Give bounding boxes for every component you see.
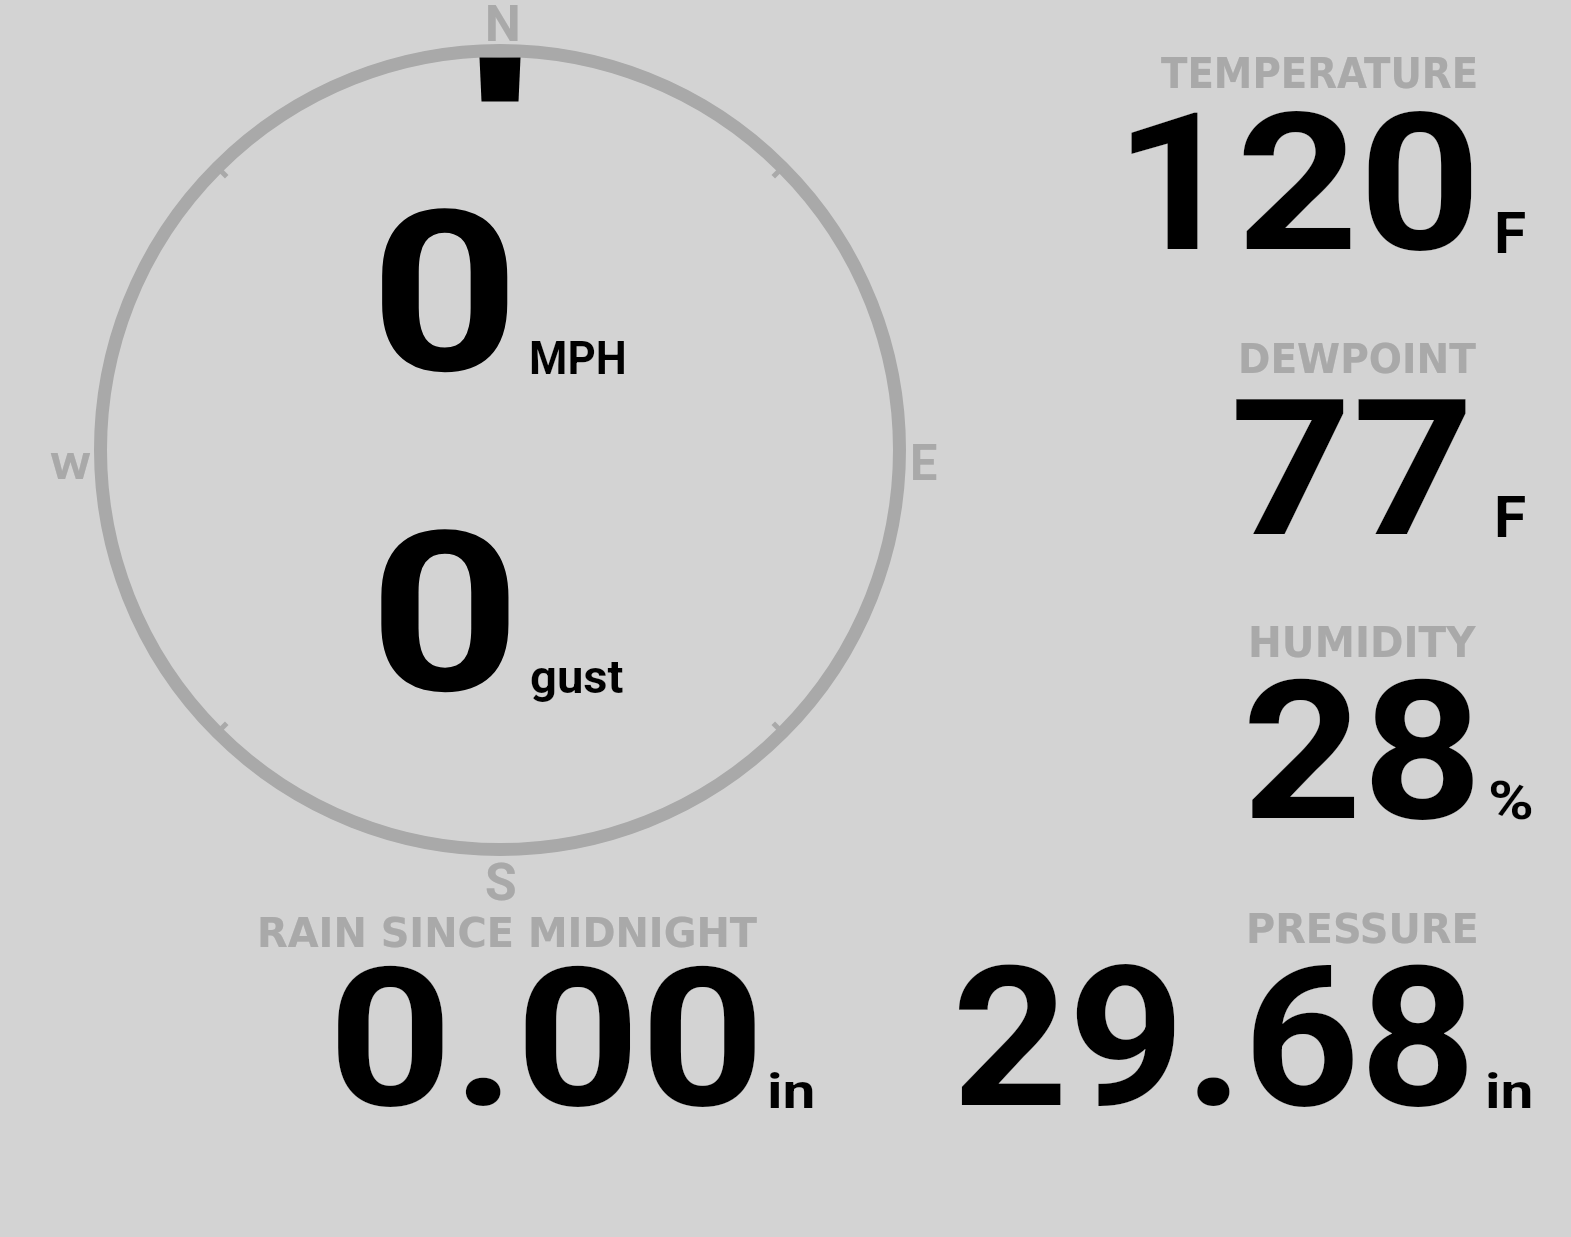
staticText: F — [1494, 200, 1527, 267]
staticText: 0 — [369, 483, 522, 744]
staticText: F — [1494, 484, 1527, 551]
staticText: % — [1488, 769, 1535, 833]
staticText: W — [50, 444, 92, 488]
button[interactable]: Humidity 28 percent — [1010, 595, 1561, 835]
staticText: N — [485, 0, 521, 53]
staticText: RAIN SINCE MIDNIGHT — [257, 909, 758, 957]
staticText: TEMPERATURE — [1161, 49, 1479, 98]
staticText: 120 — [1114, 72, 1481, 295]
button[interactable]: Rain since midnight 0.00 inches — [200, 880, 860, 1130]
staticText: E — [910, 433, 938, 492]
button[interactable]: Dewpoint 77 degrees Fahrenheit — [1010, 310, 1561, 550]
staticText: 28 — [1242, 639, 1483, 865]
staticText: 77 — [1230, 358, 1475, 581]
staticText: in — [767, 1064, 817, 1119]
button[interactable]: Wind 0 miles per hour, gust 0, direction… — [0, 0, 1000, 905]
staticText: 29.68 — [952, 925, 1476, 1153]
staticText: MPH — [529, 331, 627, 385]
staticText: HUMIDITY — [1248, 618, 1476, 667]
button[interactable]: Temperature 120 degrees Fahrenheit — [1010, 30, 1561, 270]
staticText: S — [485, 852, 518, 913]
staticText: 0 — [370, 162, 520, 425]
staticText: DEWPOINT — [1238, 335, 1476, 383]
button[interactable]: Pressure 29.68 inches — [880, 880, 1561, 1130]
staticText: gust — [530, 649, 624, 704]
staticText: in — [1485, 1064, 1535, 1119]
staticText: 0.00 — [328, 926, 765, 1152]
staticText: PRESSURE — [1246, 905, 1479, 953]
